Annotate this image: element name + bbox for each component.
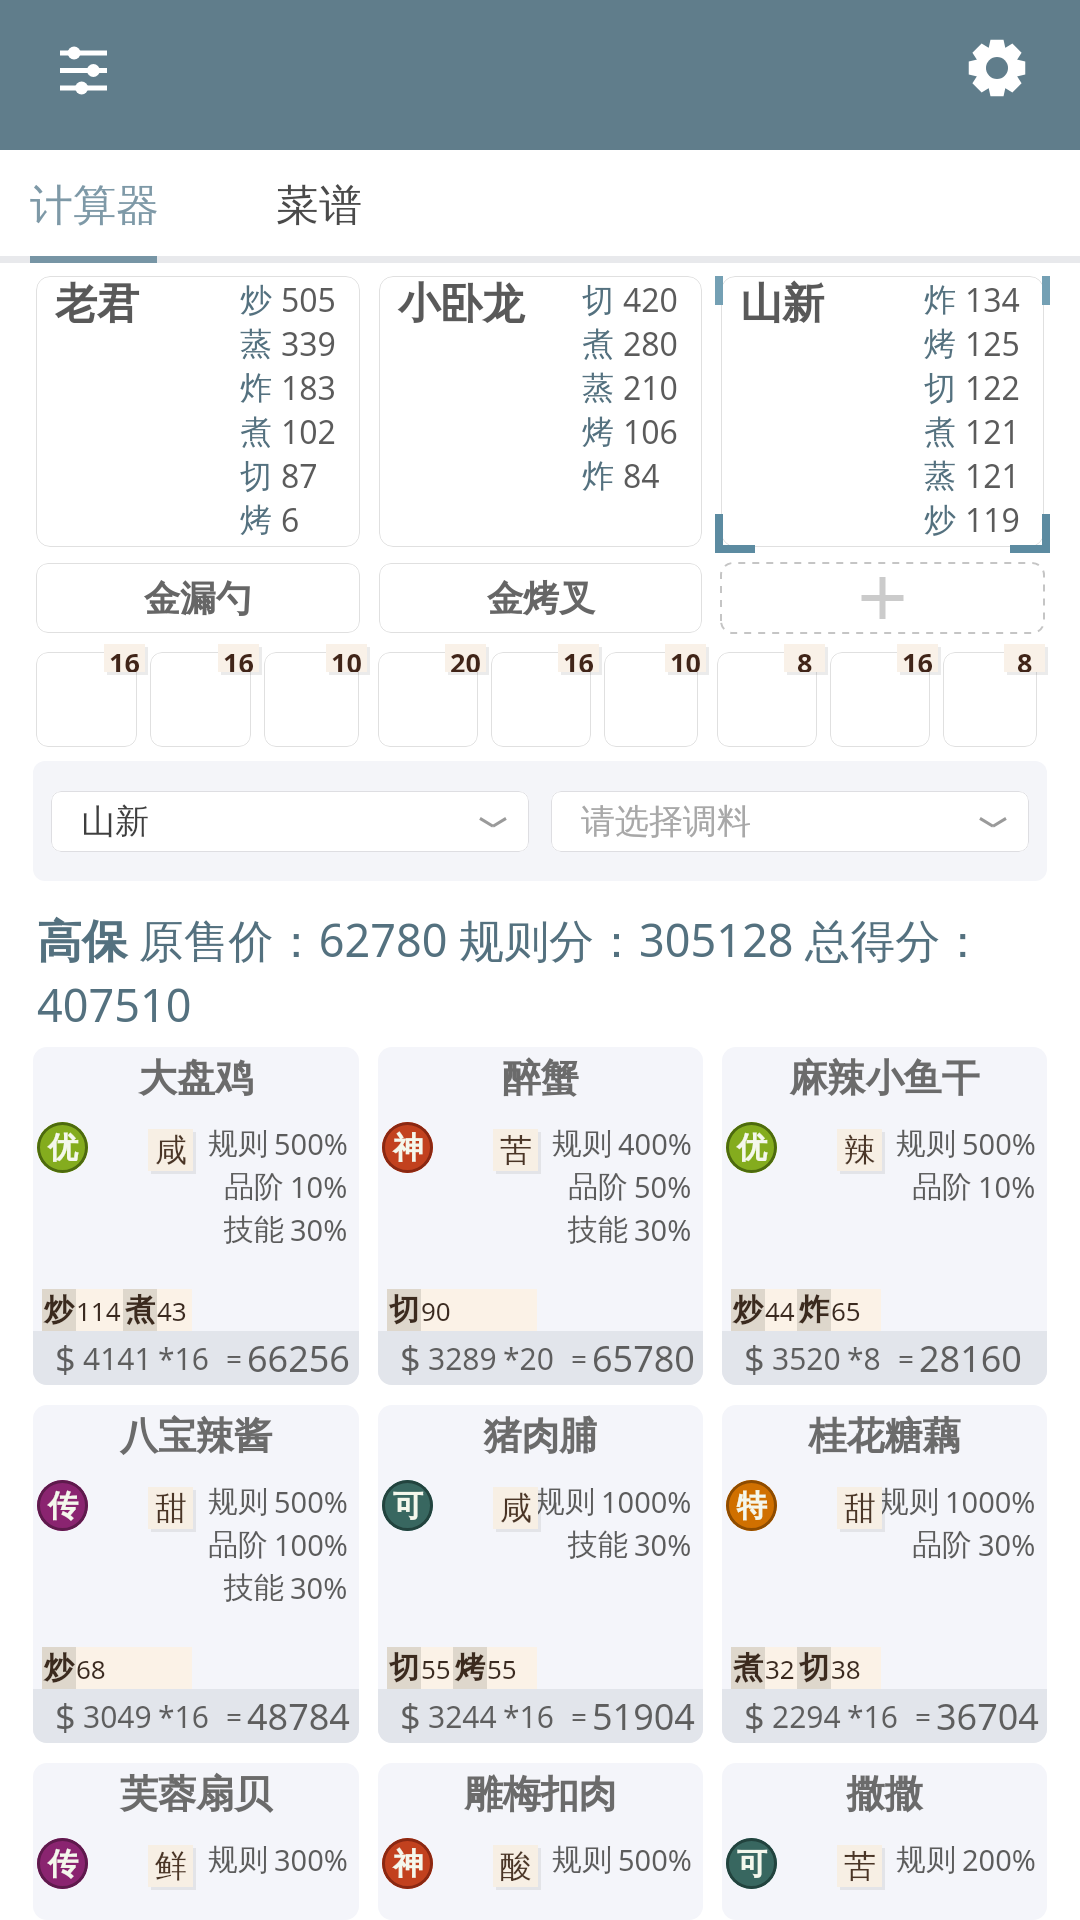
staticText: 1000% bbox=[945, 1482, 1036, 1521]
button[interactable]: 撒撒 bbox=[722, 1763, 1047, 1920]
staticText: 金漏勺 bbox=[144, 576, 252, 621]
button[interactable]: Add item bbox=[721, 563, 1044, 633]
button[interactable] bbox=[604, 652, 698, 747]
staticText: 规则 bbox=[208, 1125, 268, 1163]
staticText: 30% bbox=[290, 1210, 348, 1249]
staticText: = bbox=[571, 1697, 588, 1735]
button[interactable] bbox=[717, 652, 817, 747]
staticText: 30% bbox=[290, 1568, 348, 1607]
staticText: 106 bbox=[623, 410, 678, 454]
button[interactable]: 请选择调料 bbox=[551, 791, 1029, 852]
staticText: 蒸 bbox=[924, 456, 956, 496]
staticText: 50% bbox=[634, 1167, 692, 1206]
button[interactable]: 醉蟹 bbox=[378, 1047, 703, 1385]
button[interactable] bbox=[36, 652, 137, 747]
button[interactable] bbox=[943, 652, 1037, 747]
staticText: 30% bbox=[634, 1525, 692, 1564]
staticText: 山新 bbox=[740, 278, 824, 331]
button[interactable]: 八宝辣酱 bbox=[33, 1405, 359, 1743]
button[interactable]: Filter bbox=[36, 32, 122, 118]
staticText: 麻辣小鱼干 bbox=[722, 1054, 1047, 1102]
staticText: 炒 bbox=[924, 500, 956, 540]
staticText: 6 bbox=[281, 498, 300, 542]
staticText: 30% bbox=[978, 1525, 1036, 1564]
staticText: 神 bbox=[393, 1845, 423, 1883]
staticText: 102 bbox=[281, 410, 336, 454]
button[interactable]: 金烤叉 bbox=[379, 563, 702, 633]
staticText: 规则 bbox=[208, 1483, 268, 1521]
staticText: 65 bbox=[831, 1293, 861, 1328]
button[interactable]: 菜谱 bbox=[189, 150, 448, 256]
staticText: 210 bbox=[623, 366, 678, 410]
staticText: 121 bbox=[965, 454, 1020, 498]
staticText: 339 bbox=[281, 322, 336, 366]
staticText: 蒸 bbox=[240, 324, 272, 364]
button[interactable]: 山新 bbox=[721, 276, 1044, 547]
staticText: 2294 bbox=[772, 1696, 841, 1737]
staticText: 神 bbox=[393, 1129, 423, 1167]
staticText: 16 bbox=[902, 644, 933, 672]
button[interactable] bbox=[830, 652, 930, 747]
staticText: 90 bbox=[421, 1293, 451, 1328]
staticText: 10 bbox=[331, 644, 362, 672]
button[interactable] bbox=[378, 652, 478, 747]
button[interactable] bbox=[491, 652, 591, 747]
staticText: 20 bbox=[450, 644, 481, 672]
button[interactable] bbox=[264, 652, 359, 747]
button[interactable]: Settings bbox=[962, 32, 1048, 118]
staticText: 8 bbox=[1017, 644, 1033, 672]
button[interactable]: 小卧龙 bbox=[379, 276, 702, 547]
staticText: 122 bbox=[965, 366, 1020, 410]
staticText: 八宝辣酱 bbox=[33, 1412, 359, 1460]
staticText: 134 bbox=[965, 278, 1020, 322]
staticText: 品阶 bbox=[224, 1168, 284, 1206]
button[interactable]: 麻辣小鱼干 bbox=[722, 1047, 1047, 1385]
staticText: 10% bbox=[290, 1167, 348, 1206]
staticText: 苦 bbox=[500, 1130, 532, 1170]
button[interactable]: 金漏勺 bbox=[36, 563, 360, 633]
staticText: 10 bbox=[670, 644, 701, 672]
button[interactable]: 大盘鸡 bbox=[33, 1047, 359, 1385]
staticText: 8 bbox=[797, 644, 813, 672]
staticText: 1000% bbox=[601, 1482, 692, 1521]
staticText: 规则 bbox=[552, 1841, 612, 1879]
staticText: 500% bbox=[274, 1482, 348, 1521]
staticText: 传 bbox=[48, 1845, 78, 1883]
staticText: 计算器 bbox=[30, 179, 159, 233]
staticText: 500% bbox=[274, 1124, 348, 1163]
button[interactable]: 老君 bbox=[36, 276, 360, 547]
staticText: 煮 bbox=[733, 1649, 763, 1687]
button[interactable]: 猪肉脯 bbox=[378, 1405, 703, 1743]
staticText: 114 bbox=[76, 1293, 121, 1328]
staticText: 炸 bbox=[924, 280, 956, 320]
button[interactable] bbox=[150, 652, 251, 747]
staticText: 280 bbox=[623, 322, 678, 366]
staticText: 300% bbox=[274, 1840, 348, 1879]
staticText: 品阶 bbox=[912, 1526, 972, 1564]
staticText: 200% bbox=[962, 1840, 1036, 1879]
staticText: 酸 bbox=[500, 1846, 532, 1886]
staticText: 16 bbox=[223, 644, 254, 672]
button[interactable]: 计算器 bbox=[0, 150, 189, 256]
button[interactable]: 桂花糖藕 bbox=[722, 1405, 1047, 1743]
staticText: 辣 bbox=[844, 1130, 876, 1170]
staticText: 桂花糖藕 bbox=[722, 1412, 1047, 1460]
staticText: $ bbox=[744, 1692, 765, 1741]
staticText: *16 bbox=[847, 1696, 898, 1737]
button[interactable]: 山新 bbox=[51, 791, 529, 852]
staticText: 3520 bbox=[772, 1338, 841, 1379]
staticText: *8 bbox=[847, 1338, 881, 1379]
button[interactable]: 芙蓉扇贝 bbox=[33, 1763, 359, 1920]
staticText: 16 bbox=[109, 644, 140, 672]
staticText: 甜 bbox=[155, 1488, 187, 1528]
staticText: 甜 bbox=[844, 1488, 876, 1528]
button[interactable]: 雕梅扣肉 bbox=[378, 1763, 703, 1920]
staticText: 金烤叉 bbox=[487, 576, 595, 621]
staticText: 可 bbox=[393, 1487, 423, 1525]
staticText: 烤 bbox=[240, 500, 272, 540]
staticText: 65780 bbox=[592, 1334, 695, 1383]
staticText: 山新 bbox=[81, 800, 475, 843]
staticText: $ bbox=[55, 1692, 76, 1741]
staticText: 特 bbox=[737, 1487, 767, 1525]
staticText: 炸 bbox=[582, 456, 614, 496]
